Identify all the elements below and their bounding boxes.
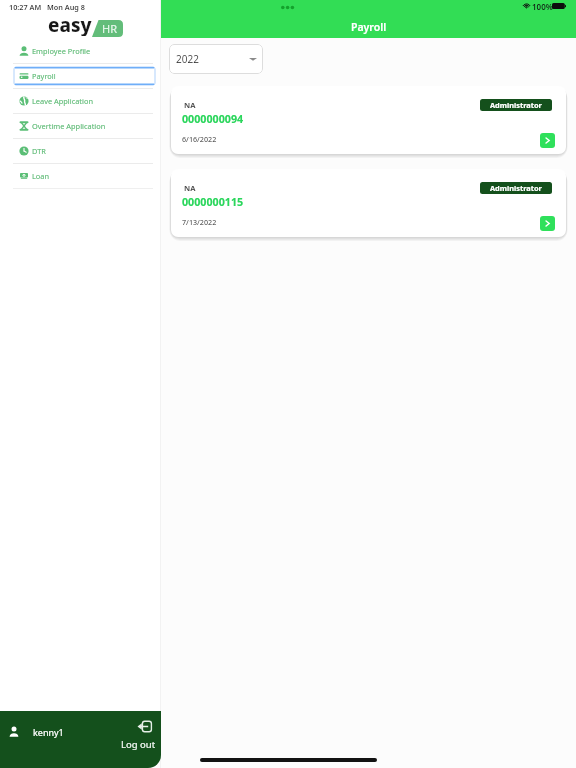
staticText: DTR bbox=[32, 146, 46, 156]
staticText: Administrator bbox=[490, 183, 542, 193]
staticText: kenny1 bbox=[33, 726, 64, 738]
button[interactable]: Payroll bbox=[14, 67, 155, 85]
button[interactable]: 2022 bbox=[169, 44, 263, 74]
button[interactable]: Leave Application bbox=[0, 89, 161, 113]
staticText: NA bbox=[184, 100, 196, 110]
staticText: 6/16/2022 bbox=[182, 134, 217, 144]
staticText: Payroll bbox=[351, 20, 387, 34]
button[interactable]: Employee Profile bbox=[0, 38, 161, 63]
staticText: 7/13/2022 bbox=[182, 217, 217, 227]
staticText: Overtime Application bbox=[32, 121, 106, 131]
button[interactable]: DTR bbox=[0, 139, 161, 163]
staticText: Payroll bbox=[32, 71, 56, 81]
button[interactable]: NA bbox=[171, 86, 566, 154]
staticText: Leave Application bbox=[32, 96, 93, 106]
staticText: 10:27 AM Mon Aug 8 bbox=[9, 2, 86, 12]
button[interactable]: kenny1 bbox=[0, 711, 161, 768]
button[interactable]: View payslip details bbox=[540, 216, 555, 231]
button[interactable]: Overtime Application bbox=[0, 114, 161, 138]
button[interactable]: View payslip details bbox=[540, 133, 555, 148]
button[interactable]: Administrator bbox=[480, 182, 552, 194]
staticText: 0000000094 bbox=[182, 112, 244, 127]
staticText: 2022 bbox=[176, 52, 199, 66]
button[interactable]: NA bbox=[171, 169, 566, 237]
staticText: 100% bbox=[532, 1, 553, 12]
staticText: Loan bbox=[32, 171, 50, 181]
staticText: Log out bbox=[121, 738, 156, 751]
staticText: easy bbox=[48, 12, 92, 36]
button[interactable]: Administrator bbox=[480, 99, 552, 111]
staticText: 0000000115 bbox=[182, 195, 244, 210]
staticText: NA bbox=[184, 183, 196, 193]
staticText: Administrator bbox=[490, 100, 542, 110]
staticText: HR bbox=[102, 21, 117, 36]
staticText: Employee Profile bbox=[32, 46, 91, 56]
button[interactable]: Loan bbox=[0, 164, 161, 188]
